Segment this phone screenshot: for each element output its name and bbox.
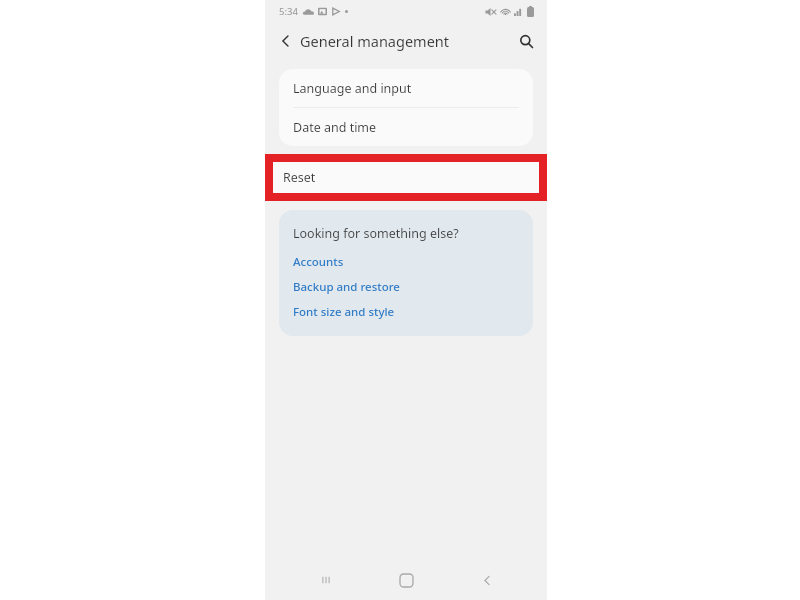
staticText: Backup and restore xyxy=(293,279,400,295)
staticText: Looking for something else? xyxy=(293,225,459,242)
staticText: Reset xyxy=(283,169,316,186)
staticText: 5:34 xyxy=(279,5,298,18)
button[interactable]: Backup and restore xyxy=(293,279,400,295)
staticText: Language and input xyxy=(293,80,412,97)
button[interactable]: Reset xyxy=(273,162,539,193)
button[interactable]: Accounts xyxy=(293,254,344,270)
button[interactable]: Back xyxy=(467,560,507,600)
button[interactable]: Home xyxy=(386,560,426,600)
button[interactable]: Back xyxy=(272,27,300,55)
button[interactable]: Language and input xyxy=(279,69,533,107)
button[interactable]: Search xyxy=(512,27,540,55)
staticText: Font size and style xyxy=(293,304,395,320)
staticText: Accounts xyxy=(293,254,344,270)
button[interactable]: Recent apps xyxy=(306,560,346,600)
button[interactable]: Date and time xyxy=(279,108,533,146)
button[interactable]: Font size and style xyxy=(293,304,395,320)
staticText: General management xyxy=(300,31,450,51)
staticText: Date and time xyxy=(293,119,377,136)
